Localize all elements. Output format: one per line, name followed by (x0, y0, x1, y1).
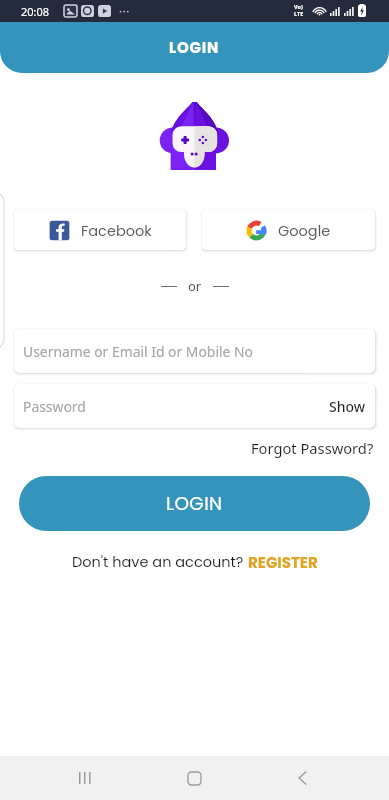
button[interactable]: Username or Email Id or Mobile No (14, 329, 375, 373)
staticText: Password (23, 397, 86, 416)
button[interactable]: Forgot Password? (251, 438, 374, 458)
button[interactable]: Home (154, 756, 234, 800)
button[interactable]: Password (14, 384, 375, 428)
staticText: Vo) (294, 3, 303, 10)
staticText: Username or Email Id or Mobile No (23, 342, 253, 361)
staticText: LTE (294, 10, 304, 17)
button[interactable]: Recents (45, 756, 125, 800)
staticText: Don't have an account? (72, 552, 248, 572)
button[interactable]: Back (262, 756, 342, 800)
staticText: LOGIN (166, 491, 223, 517)
staticText: LOGIN (169, 37, 220, 58)
button[interactable]: LOGIN (19, 476, 370, 531)
button[interactable]: REGISTER (248, 552, 318, 573)
staticText: or (188, 277, 202, 295)
staticText: 20:08 (21, 4, 50, 19)
button[interactable]: Facebook (14, 210, 186, 250)
staticText: Google (278, 221, 331, 241)
staticText: Facebook (81, 221, 152, 241)
staticText: Show (329, 397, 366, 416)
button[interactable]: Google (202, 210, 375, 250)
